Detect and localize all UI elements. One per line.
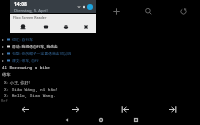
button[interactable]: Flico Screen Reader: [10, 14, 96, 33]
staticText: 14:08: [14, 1, 27, 8]
staticText: X: 小王, 你好!: [4, 80, 30, 86]
button[interactable]: Refresh: [177, 5, 190, 18]
button[interactable]: 课文: 借车, 自行: [1, 57, 200, 64]
button[interactable]: Add: [110, 5, 123, 18]
staticText: Flico Screen Reader: [13, 15, 47, 20]
button[interactable]: Image: [41, 22, 50, 31]
staticText: 借车: [2, 72, 11, 77]
button[interactable]: Home: [96, 115, 105, 124]
button[interactable]: Close: [81, 22, 90, 31]
staticText: Ref: [1, 98, 8, 103]
staticText: Dienstag, 5. April: [14, 8, 48, 14]
button[interactable]: 语法: 我得借自行车, 我先走: [1, 43, 200, 50]
staticText: X: Xiǎo Wáng, nǐ hǎo!: [4, 86, 59, 92]
button[interactable]: Print: [61, 22, 70, 31]
staticText: X: Hello, Xiao Wang.: [4, 92, 56, 98]
staticText: 课文: 借车, 自行: [12, 58, 39, 63]
staticText: 词汇: 自行车: [12, 37, 33, 42]
staticText: 语法: 我得借自行车, 我先走: [12, 44, 58, 49]
staticText: 句型: 你的帽子一定要借我走可以吗: [12, 51, 71, 56]
button[interactable]: Voice: [18, 22, 27, 31]
button[interactable]: Back: [62, 115, 71, 124]
staticText: 41 Borrowing a bike: [2, 65, 50, 71]
button[interactable]: Search: [142, 5, 155, 18]
button[interactable]: Next: [70, 104, 81, 115]
button[interactable]: Skip to start: [120, 104, 131, 115]
button[interactable]: 词汇: 自行车: [1, 36, 200, 43]
button[interactable]: Account: [87, 4, 93, 10]
button[interactable]: Previous: [20, 104, 31, 115]
button[interactable]: 句型: 你的帽子一定要借我走可以吗: [1, 50, 200, 57]
button[interactable]: Recents: [131, 115, 140, 124]
button[interactable]: Skip to end: [167, 104, 178, 115]
